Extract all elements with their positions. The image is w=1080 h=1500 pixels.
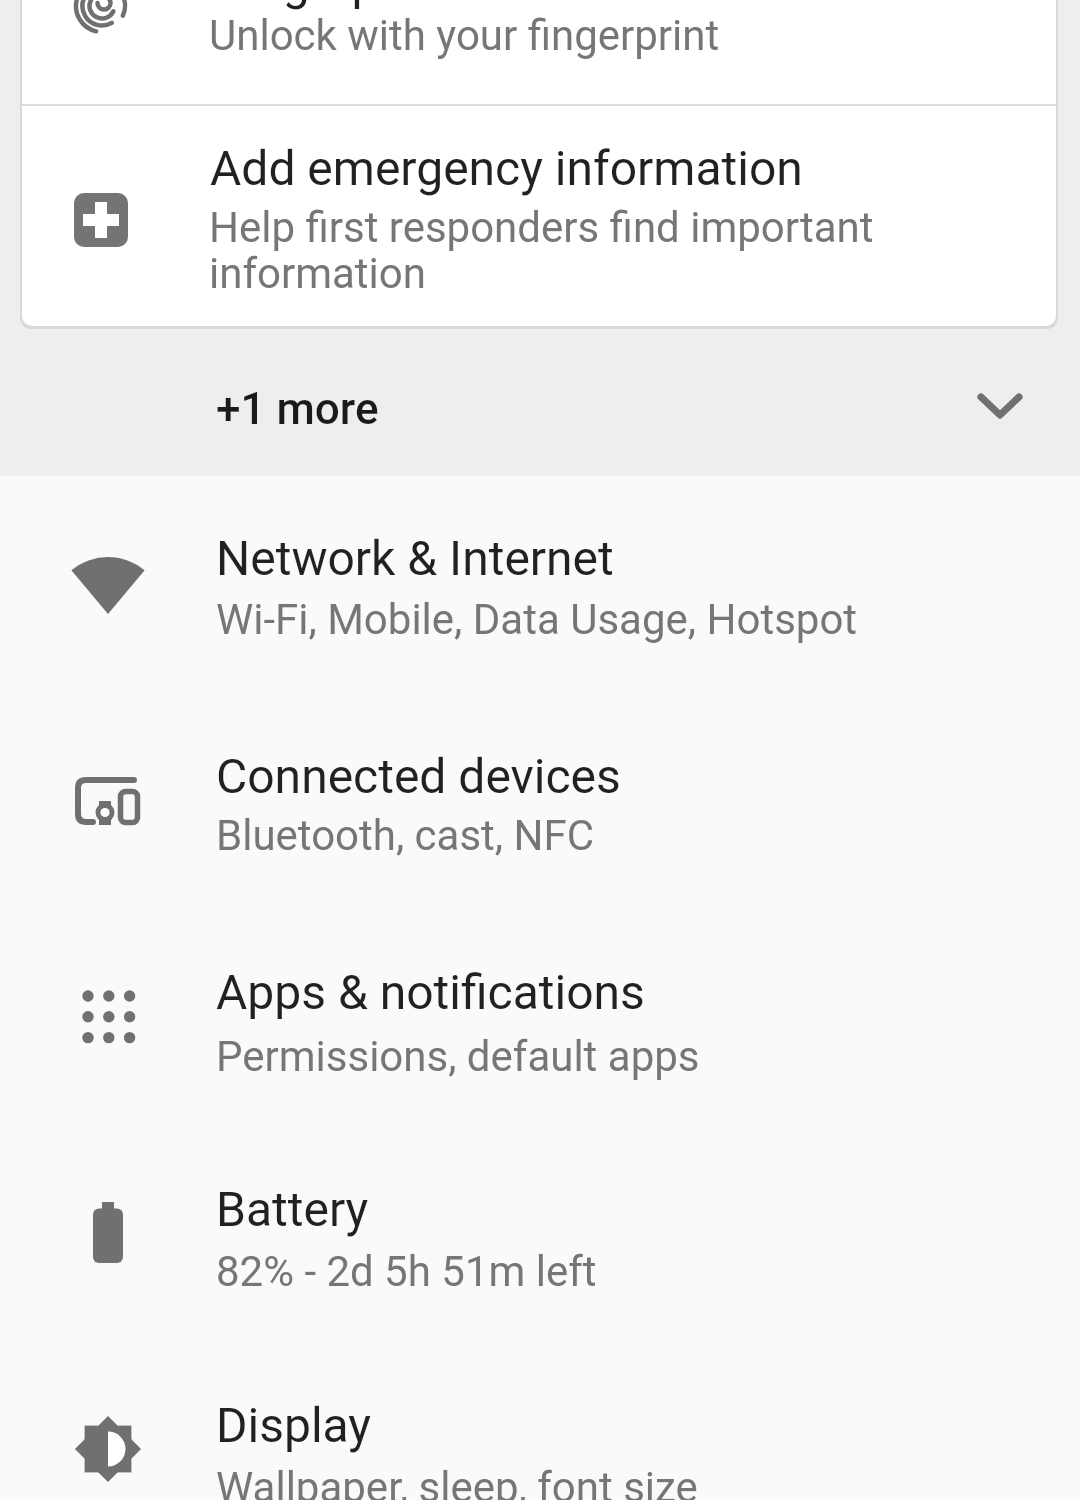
button[interactable]: Apps & notifications — [0, 910, 1080, 1127]
button[interactable]: Display — [0, 1343, 1080, 1500]
button[interactable]: Network & Internet — [0, 476, 1080, 693]
staticText: Wallpaper, sleep, font size — [216, 1463, 698, 1500]
staticText: Apps & notifications — [216, 964, 645, 1020]
staticText: 82% - 2d 5h 51m left — [216, 1247, 597, 1296]
button[interactable]: Battery — [0, 1127, 1080, 1344]
staticText: Help first responders find important — [209, 203, 874, 252]
staticText: +1 more — [216, 383, 379, 435]
staticText: Permissions, default apps — [216, 1032, 700, 1081]
staticText: Battery — [216, 1181, 369, 1237]
staticText: Bluetooth, cast, NFC — [216, 811, 595, 860]
staticText: Connected devices — [216, 748, 621, 804]
staticText: Wi-Fi, Mobile, Data Usage, Hotspot — [216, 595, 858, 644]
staticText: Fingerprint — [218, 0, 449, 10]
staticText: Unlock with your fingerprint — [209, 11, 720, 60]
button[interactable]: Connected devices — [0, 693, 1080, 910]
staticText: information — [209, 249, 426, 298]
staticText: Network & Internet — [216, 530, 614, 586]
staticText: Add emergency information — [210, 140, 803, 196]
button[interactable] — [22, 106, 1056, 326]
button[interactable] — [0, 340, 1080, 476]
button[interactable] — [22, 0, 1056, 105]
staticText: Display — [216, 1397, 372, 1453]
